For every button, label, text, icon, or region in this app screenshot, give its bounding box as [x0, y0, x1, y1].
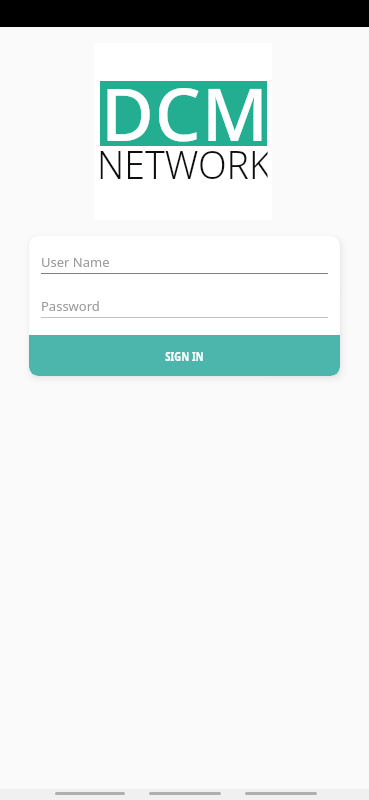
button[interactable]: Recents	[245, 792, 317, 795]
button[interactable]: SIGN IN	[29, 335, 340, 376]
staticText: DCM	[101, 63, 269, 162]
staticText: Password	[41, 297, 100, 315]
button[interactable]: Back	[55, 792, 125, 795]
button[interactable]: Home	[149, 792, 221, 795]
button[interactable]: Password field	[29, 289, 340, 319]
staticText: NETWORK	[97, 137, 267, 190]
staticText: SIGN IN	[165, 348, 204, 364]
button[interactable]: User Name field	[29, 244, 340, 274]
staticText: User Name	[41, 253, 110, 271]
